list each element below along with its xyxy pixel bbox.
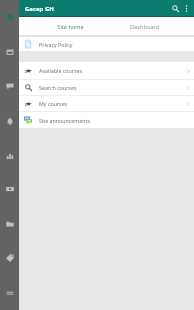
button[interactable]: Notifications: [2, 113, 17, 128]
button[interactable]: Tags: [2, 250, 17, 265]
staticText: Site announcements: [39, 117, 91, 124]
staticText: Available courses: [39, 67, 83, 74]
staticText: Privacy Policy: [39, 41, 73, 48]
button[interactable]: Grades: [2, 148, 17, 163]
button[interactable]: Home: [2, 9, 17, 24]
button[interactable]: More: [2, 285, 17, 300]
button[interactable]: Files: [2, 216, 17, 231]
staticText: My courses: [39, 100, 68, 107]
staticText: Gacep GH: [25, 5, 54, 13]
button[interactable]: My courses: [19, 96, 194, 111]
button[interactable]: Privacy Policy: [19, 37, 194, 51]
staticText: Search courses: [39, 84, 77, 91]
button[interactable]: Available courses: [19, 62, 194, 79]
button[interactable]: More options: [179, 1, 194, 16]
staticText: Site home: [57, 23, 84, 31]
button[interactable]: Search courses: [19, 80, 194, 95]
button[interactable]: Messages: [2, 78, 17, 93]
button[interactable]: Site announcements: [19, 112, 194, 128]
button[interactable]: Dashboard: [107, 17, 181, 37]
staticText: Dashboard: [130, 23, 159, 31]
button[interactable]: Calendar: [2, 44, 17, 59]
button[interactable]: Search: [168, 1, 183, 16]
button[interactable]: Media: [2, 181, 17, 196]
button[interactable]: Site home: [33, 17, 107, 37]
